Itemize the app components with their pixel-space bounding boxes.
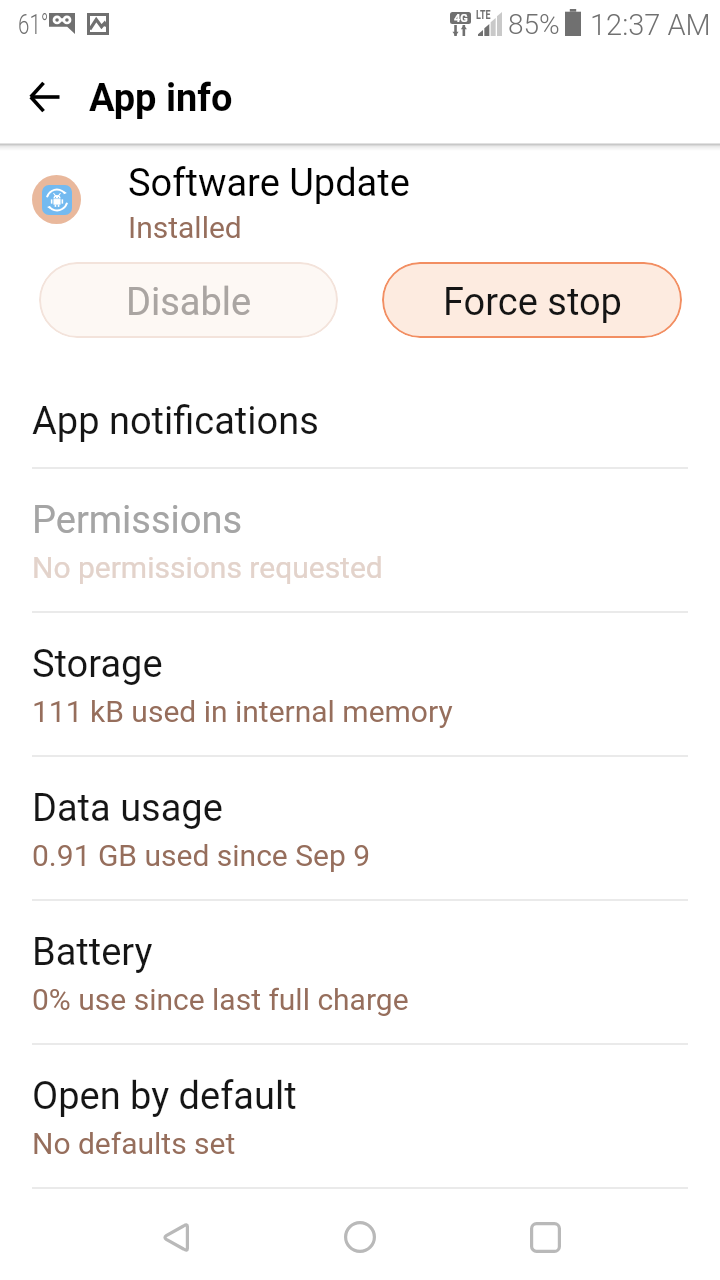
- button[interactable]: Back: [130, 1192, 220, 1280]
- button[interactable]: Home: [315, 1192, 405, 1280]
- staticText: 111 kB used in internal memory: [32, 694, 453, 729]
- staticText: Battery: [32, 930, 153, 975]
- staticText: 0% use since last full charge: [32, 982, 409, 1017]
- staticText: Installed: [128, 210, 242, 245]
- button[interactable]: Data usage: [0, 756, 720, 900]
- button[interactable]: App notifications: [0, 324, 720, 468]
- button[interactable]: Back: [8, 60, 80, 133]
- button[interactable]: Recents: [500, 1192, 590, 1280]
- staticText: 4G: [454, 12, 468, 24]
- staticText: No defaults set: [32, 1126, 236, 1161]
- staticText: 85%: [508, 8, 560, 41]
- button[interactable]: Battery: [0, 900, 720, 1044]
- button[interactable]: Open by default: [0, 1044, 720, 1188]
- staticText: Storage: [32, 642, 163, 687]
- staticText: No permissions requested: [32, 550, 383, 585]
- staticText: Open by default: [32, 1074, 297, 1119]
- staticText: Software Update: [128, 161, 410, 206]
- staticText: Permissions: [32, 498, 243, 543]
- staticText: Disable: [126, 280, 252, 325]
- staticText: Data usage: [32, 786, 223, 831]
- staticText: App info: [89, 76, 233, 121]
- staticText: App notifications: [32, 399, 319, 444]
- staticText: 12:37 AM: [590, 8, 711, 42]
- staticText: 61°: [18, 9, 49, 41]
- button[interactable]: Force stop: [382, 262, 682, 338]
- button[interactable]: Storage: [0, 612, 720, 756]
- staticText: Force stop: [443, 280, 622, 325]
- button[interactable]: Disable: [39, 262, 338, 338]
- button[interactable]: Permissions: [0, 468, 720, 612]
- staticText: 0.91 GB used since Sep 9: [32, 838, 371, 873]
- staticText: LTE: [476, 8, 491, 22]
